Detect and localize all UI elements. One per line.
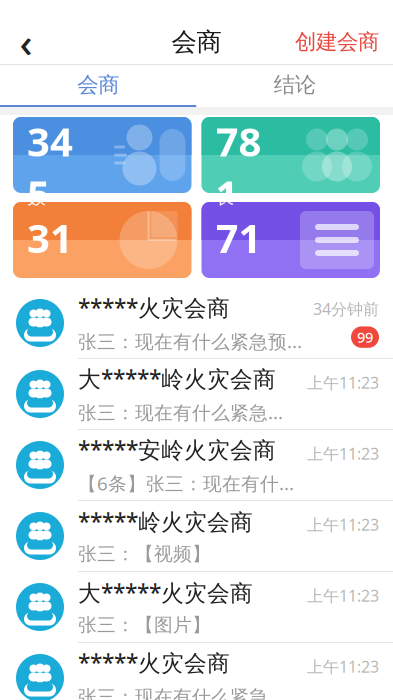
button[interactable]: *****火灾会商 bbox=[0, 288, 393, 359]
button[interactable]: 会商总时长 bbox=[201, 202, 380, 278]
staticText: 3121 bbox=[27, 211, 73, 317]
button[interactable]: *****火灾会商 bbox=[0, 643, 393, 700]
staticText: 大*****火灾会商 bbox=[78, 577, 253, 608]
staticText: 7126 bbox=[215, 211, 261, 317]
button[interactable]: 结论 bbox=[196, 65, 393, 105]
staticText: 34分钟前 bbox=[313, 298, 379, 319]
staticText: 张三：现在有什么紧急预案？ bbox=[78, 684, 301, 700]
staticText: *****火灾会商 bbox=[78, 647, 230, 678]
button[interactable]: 返回 bbox=[0, 20, 52, 64]
staticText: 上午11:23 bbox=[307, 514, 379, 535]
staticText: 当前会商 bbox=[27, 89, 103, 112]
button[interactable]: 大*****火灾会商 bbox=[0, 572, 393, 643]
staticText: 会商 bbox=[171, 26, 221, 57]
staticText: 人 bbox=[75, 293, 92, 314]
staticText: 张三：【图片】 bbox=[78, 614, 211, 636]
staticText: 【6条】张三：现在有什么紧急预案？ bbox=[78, 470, 301, 496]
staticText: 会商总人数 bbox=[27, 163, 103, 209]
staticText: 场 bbox=[263, 196, 280, 218]
staticText: *****岭火灾会商 bbox=[78, 506, 253, 537]
button[interactable]: 全部会商 bbox=[201, 117, 380, 193]
button[interactable]: *****岭火灾会商 bbox=[0, 501, 393, 572]
staticText: 场 bbox=[75, 196, 92, 218]
staticText: 上午11:23 bbox=[307, 372, 379, 393]
button[interactable]: 大*****岭火灾会商 bbox=[0, 359, 393, 430]
staticText: 张三：【视频】 bbox=[78, 543, 211, 565]
button[interactable]: 创建会商 bbox=[281, 20, 393, 64]
staticText: 创建会商 bbox=[295, 29, 379, 55]
staticText: 结论 bbox=[274, 72, 316, 98]
staticText: 99 bbox=[357, 327, 373, 347]
staticText: 全部会商 bbox=[215, 89, 291, 112]
staticText: 会商总时长 bbox=[215, 163, 291, 209]
staticText: 大*****岭火灾会商 bbox=[78, 363, 276, 394]
staticText: 张三：现在有什么紧急预案最多文字最多… bbox=[78, 400, 301, 424]
staticText: 张三：现在有什么紧急预案？ bbox=[78, 329, 307, 353]
staticText: 781 bbox=[215, 114, 261, 220]
button[interactable]: 会商 bbox=[0, 65, 196, 105]
staticText: 345 bbox=[27, 114, 73, 220]
button[interactable]: 会商总人数 bbox=[13, 202, 191, 278]
staticText: 上午11:23 bbox=[307, 656, 379, 677]
staticText: 会商 bbox=[77, 72, 119, 98]
staticText: *****安岭火灾会商 bbox=[78, 434, 276, 464]
button[interactable]: 当前会商 bbox=[13, 117, 191, 193]
staticText: *****火灾会商 bbox=[78, 292, 230, 323]
button[interactable]: *****安岭火灾会商 bbox=[0, 430, 393, 501]
staticText: 上午11:23 bbox=[307, 585, 379, 606]
staticText: 上午11:23 bbox=[307, 443, 379, 464]
staticText: ‹ bbox=[19, 15, 32, 68]
